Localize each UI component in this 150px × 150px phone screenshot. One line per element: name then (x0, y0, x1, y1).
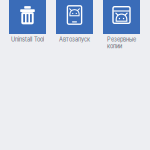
button[interactable]: Uninstall Tool (9, 0, 46, 54)
staticText: Uninstall Tool (11, 36, 44, 43)
button[interactable]: Резервные копии (103, 0, 140, 54)
staticText: Автозапуск (59, 36, 90, 43)
button[interactable]: Автозапуск (56, 0, 93, 54)
staticText: Резервные копии (107, 36, 136, 50)
